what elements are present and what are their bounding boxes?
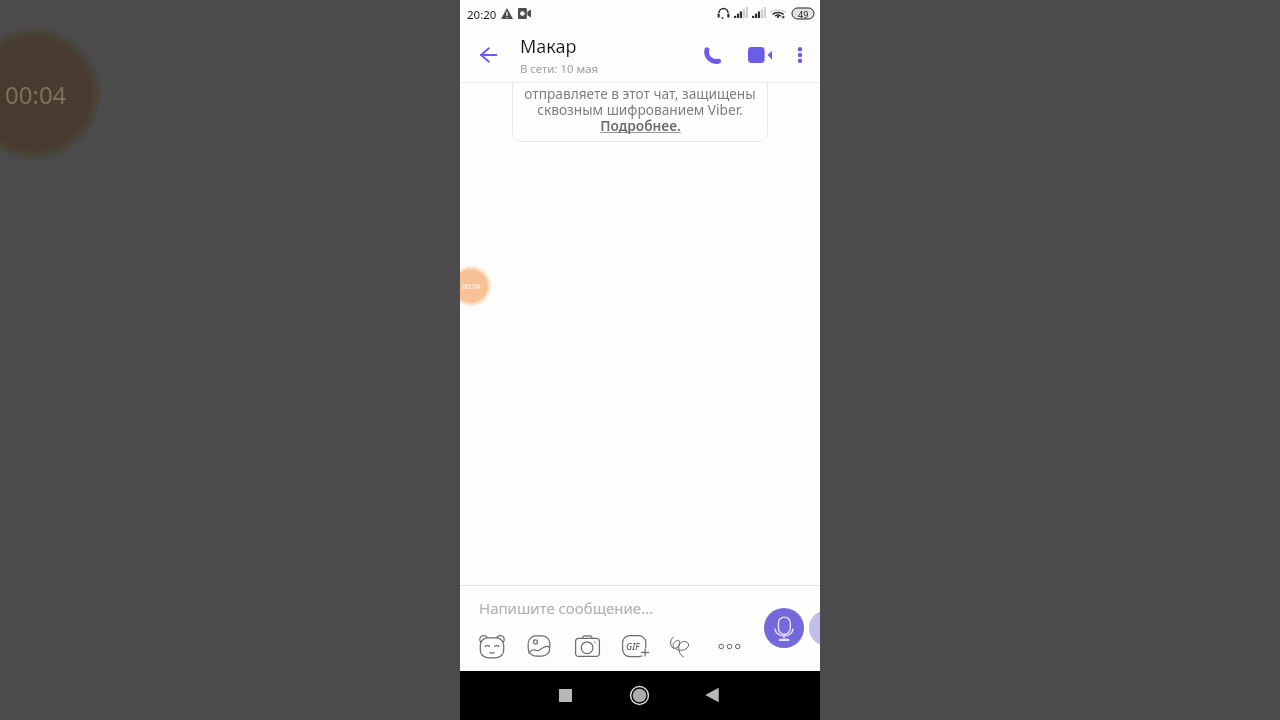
button[interactable]: Camera (563, 626, 611, 666)
button[interactable]: Home (617, 673, 661, 717)
staticText: В сети: 10 мая (520, 61, 599, 77)
staticText: 20:20 (467, 7, 497, 23)
staticText: GIF (626, 640, 640, 652)
button[interactable]: Stickers (468, 626, 516, 666)
staticText: Подробнее. (600, 116, 681, 135)
button[interactable]: Recents (543, 673, 587, 717)
button[interactable]: Doodle (657, 626, 705, 666)
staticText: сквозным шифрованием Viber. (537, 100, 743, 119)
button[interactable]: Record voice message (764, 608, 804, 648)
button[interactable]: End-to-end encryption notice (512, 83, 768, 142)
staticText: 00:04 (462, 282, 480, 292)
button[interactable]: More options (778, 33, 820, 77)
staticText: Напишите сообщение... (479, 598, 654, 618)
button[interactable]: Макар (520, 28, 700, 83)
button[interactable]: Back (466, 33, 510, 77)
staticText: Макар (520, 34, 577, 59)
button[interactable]: Call (690, 33, 734, 77)
staticText: 00:04 (5, 78, 67, 111)
button[interactable]: Video call (738, 33, 782, 77)
button[interactable]: Back (690, 673, 734, 717)
staticText: отправляете в этот чат, защищены (524, 84, 756, 103)
staticText: 49 (798, 8, 809, 19)
button[interactable]: Gallery (515, 626, 563, 666)
button[interactable]: More (705, 626, 753, 666)
button[interactable]: Send (809, 610, 820, 646)
button[interactable]: GIF (610, 626, 658, 666)
